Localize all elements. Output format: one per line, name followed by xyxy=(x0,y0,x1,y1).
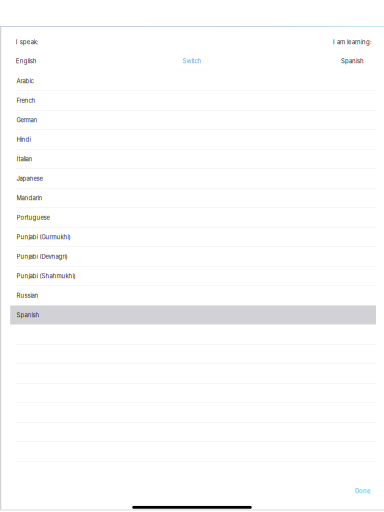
button[interactable]: German xyxy=(10,110,376,130)
button[interactable]: Hindi xyxy=(10,130,376,149)
staticText: Spanish xyxy=(341,57,364,65)
staticText: Punjabi (Gurmukhi) xyxy=(16,233,70,241)
staticText: French xyxy=(16,97,35,104)
staticText: Punjabi (Shahmukhi) xyxy=(16,272,75,280)
staticText: Japanese xyxy=(16,175,42,182)
staticText: Hindi xyxy=(16,136,30,143)
button[interactable]: Japanese xyxy=(10,169,376,188)
staticText: Mandarin xyxy=(16,194,42,202)
button[interactable]: Russian xyxy=(10,286,376,305)
staticText: Russian xyxy=(16,292,38,299)
button[interactable]: Punjabi (Shahmukhi) xyxy=(10,266,376,286)
button[interactable]: Italian xyxy=(10,149,376,169)
staticText: Italian xyxy=(16,155,32,163)
staticText: Punjabi (Devnagri) xyxy=(16,253,67,260)
button[interactable]: Switch xyxy=(177,54,206,68)
staticText: Done xyxy=(355,488,370,495)
staticText: German xyxy=(16,116,37,124)
staticText: Switch xyxy=(182,57,201,65)
button[interactable]: Punjabi (Devnagri) xyxy=(10,247,376,266)
button[interactable]: Punjabi (Gurmukhi) xyxy=(10,227,376,247)
staticText: I am learning: xyxy=(333,38,372,46)
button[interactable]: Mandarin xyxy=(10,188,376,208)
staticText: Portuguese xyxy=(16,214,49,221)
button[interactable]: Portuguese xyxy=(10,208,376,227)
staticText: English xyxy=(16,57,37,65)
button[interactable]: Arabic xyxy=(10,71,376,91)
button[interactable]: French xyxy=(10,91,376,110)
button[interactable]: Done xyxy=(350,484,375,499)
staticText: I speak: xyxy=(16,38,39,46)
staticText: Spanish xyxy=(16,311,39,319)
button[interactable]: Spanish xyxy=(10,305,376,325)
staticText: Arabic xyxy=(16,77,33,85)
